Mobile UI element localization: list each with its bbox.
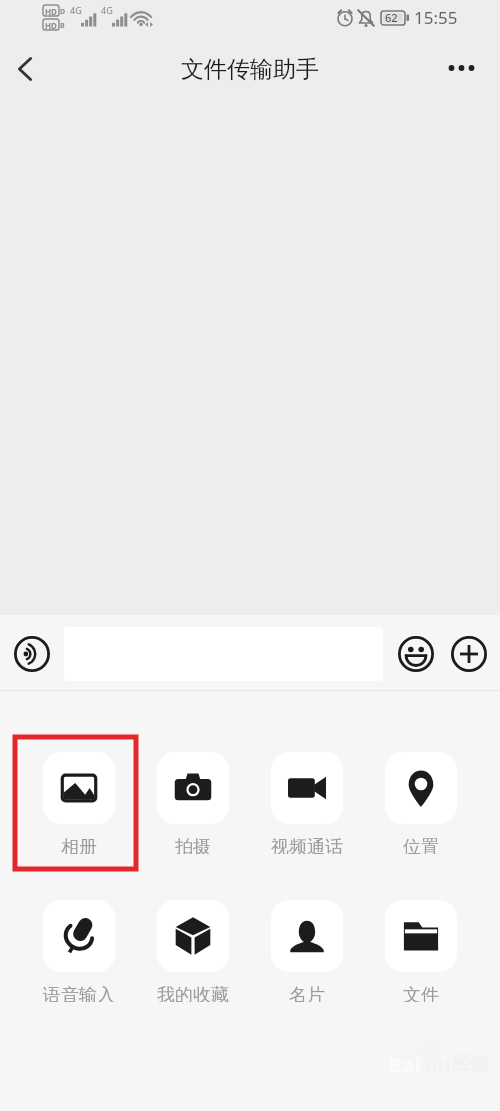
button[interactable]: 视频通话: [250, 744, 364, 854]
staticText: 文件传输助手: [0, 55, 500, 84]
button[interactable]: 语音输入: [22, 892, 136, 1002]
button[interactable]: Voice message: [9, 631, 55, 677]
staticText: B: [60, 21, 65, 31]
staticText: 位置: [403, 836, 439, 854]
staticText: 相册: [61, 836, 97, 854]
button[interactable]: 文件: [364, 892, 478, 1002]
button[interactable]: Back: [1, 45, 49, 93]
staticText: 拍摄: [175, 836, 211, 854]
button[interactable]: 位置: [364, 744, 478, 854]
button[interactable]: More functions: [446, 631, 492, 677]
staticText: 62: [385, 10, 398, 25]
button[interactable]: 相册: [22, 744, 136, 854]
button[interactable]: 名片: [250, 892, 364, 1002]
staticText: HD: [45, 6, 57, 17]
button[interactable]: More options: [438, 44, 486, 92]
staticText: 名片: [289, 984, 325, 1002]
staticText: 4G: [70, 4, 82, 16]
staticText: 文件: [403, 984, 439, 1002]
staticText: 15:55: [414, 6, 458, 29]
staticText: 视频通话: [271, 836, 343, 854]
button[interactable]: Emoji: [393, 631, 439, 677]
staticText: 4G: [101, 4, 113, 16]
button[interactable]: 我的收藏: [136, 892, 250, 1002]
staticText: 语音输入: [43, 984, 115, 1002]
staticText: HD: [45, 20, 57, 31]
staticText: D: [60, 7, 66, 17]
button[interactable]: 拍摄: [136, 744, 250, 854]
staticText: 我的收藏: [157, 984, 229, 1002]
